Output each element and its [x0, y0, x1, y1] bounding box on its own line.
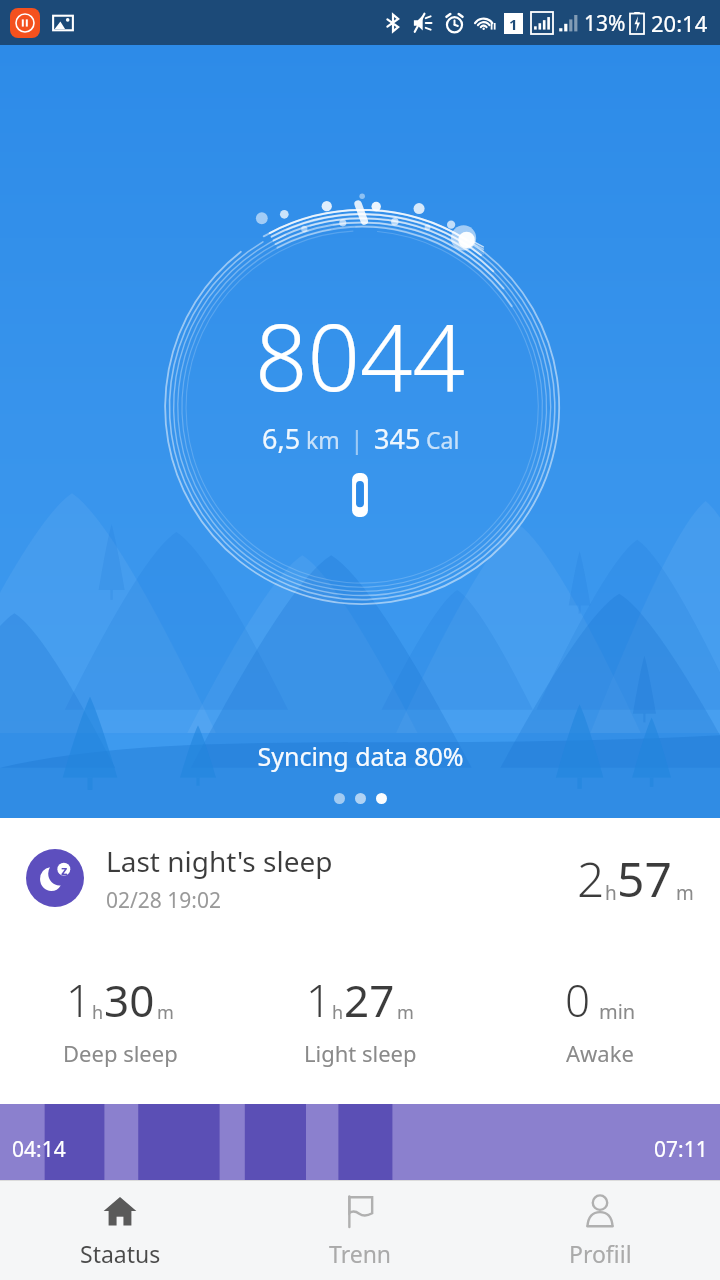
button[interactable]: z	[0, 836, 720, 920]
staticText: min	[599, 998, 636, 1025]
staticText: Deep sleep	[63, 1038, 178, 1068]
staticText: h	[92, 1000, 104, 1025]
button[interactable]: 1	[240, 970, 480, 1068]
staticText: Profiil	[569, 1238, 632, 1269]
staticText: 8044	[255, 293, 466, 418]
staticText: m	[157, 1000, 174, 1025]
staticText: 07:11	[654, 1135, 708, 1164]
staticText: km	[306, 424, 340, 455]
button[interactable]: 1	[0, 970, 240, 1068]
staticText: Trenn	[329, 1238, 392, 1269]
staticText: 13%	[584, 9, 626, 38]
staticText: 20:14	[651, 8, 708, 38]
staticText: 04:14	[12, 1135, 66, 1164]
staticText: h	[605, 880, 617, 906]
staticText: 27	[344, 970, 395, 1030]
staticText: m	[397, 1000, 414, 1025]
button[interactable]: 0	[480, 970, 720, 1068]
staticText: Light sleep	[304, 1038, 417, 1068]
staticText: Staatus	[80, 1238, 161, 1269]
button[interactable]: Connected band	[349, 473, 371, 517]
staticText: h	[332, 1000, 344, 1025]
staticText: Cal	[426, 424, 460, 455]
button[interactable]: Profiil	[480, 1181, 720, 1280]
staticText: m	[676, 880, 694, 906]
button[interactable]: Staatus	[0, 1181, 240, 1280]
staticText: 1	[306, 970, 332, 1030]
staticText: z	[61, 861, 68, 879]
staticText: 57	[617, 846, 672, 911]
staticText: 2	[577, 846, 605, 911]
staticText: 345	[374, 420, 421, 457]
staticText: 02/28 19:02	[106, 886, 221, 915]
staticText: Last night's sleep	[106, 842, 333, 880]
staticText: Syncing data 80%	[257, 739, 464, 773]
staticText: 6,5	[262, 420, 301, 457]
button[interactable]: Trenn	[240, 1181, 480, 1280]
staticText: Awake	[566, 1038, 634, 1068]
staticText: 1	[66, 970, 92, 1030]
staticText: 0	[565, 970, 591, 1030]
button[interactable]: 04:14	[0, 1104, 720, 1180]
staticText: |	[350, 422, 364, 456]
staticText: 30	[104, 970, 155, 1030]
staticText: 1	[509, 14, 518, 34]
